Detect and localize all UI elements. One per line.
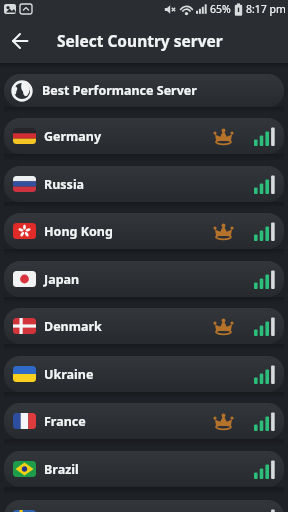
staticText: Ukraine: [44, 366, 94, 383]
button[interactable]: Brazil: [4, 451, 284, 487]
staticText: Select Country server: [57, 30, 223, 51]
staticText: Hong Kong: [44, 223, 113, 240]
button[interactable]: Hong Kong: [4, 213, 284, 249]
button[interactable]: Best Performance Server: [4, 74, 284, 107]
staticText: 65%: [210, 2, 231, 16]
button[interactable]: [6, 27, 34, 55]
staticText: France: [44, 413, 86, 430]
button[interactable]: Russia: [4, 166, 284, 202]
staticText: Russia: [44, 176, 85, 193]
staticText: 8:17 pm: [246, 2, 286, 16]
button[interactable]: France: [4, 403, 284, 439]
button[interactable]: Denmark: [4, 308, 284, 344]
staticText: Best Performance Server: [42, 82, 197, 99]
staticText: Germany: [44, 128, 102, 145]
staticText: Japan: [44, 271, 80, 288]
staticText: Denmark: [44, 318, 102, 335]
button[interactable]: Sweden: [4, 500, 284, 512]
button[interactable]: Germany: [4, 118, 284, 154]
button[interactable]: Ukraine: [4, 356, 284, 392]
staticText: Brazil: [44, 461, 79, 478]
button[interactable]: Japan: [4, 261, 284, 297]
